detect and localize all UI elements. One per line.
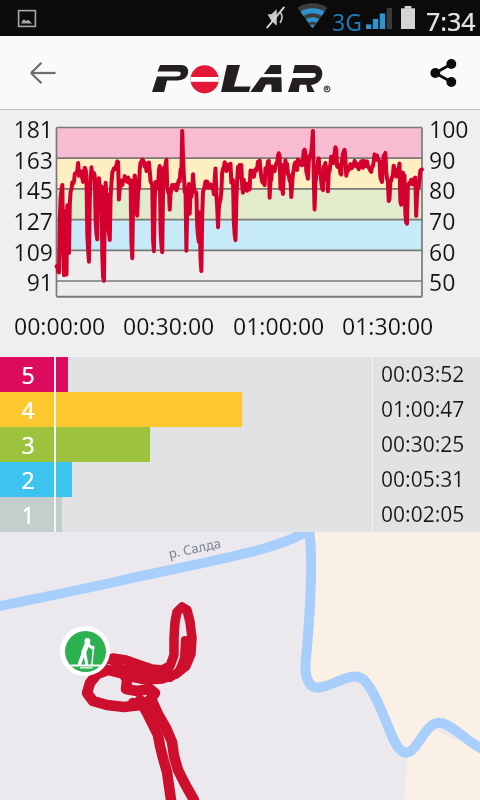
staticText: 00:05:31 (381, 465, 465, 494)
staticText: 4 (1, 394, 55, 425)
staticText: 109 (2, 236, 53, 267)
staticText: 3 (1, 429, 55, 460)
staticText: 60 (429, 236, 479, 267)
staticText: 50 (429, 266, 479, 297)
staticText: 145 (2, 174, 53, 205)
button[interactable]: Share (418, 48, 468, 98)
button[interactable]: 3 (0, 427, 480, 462)
staticText: 00:02:05 (381, 500, 465, 529)
staticText: 2 (1, 464, 55, 495)
staticText: р. Салда (167, 534, 223, 562)
button[interactable]: Start point (60, 626, 110, 676)
staticText: 7:34 (426, 4, 476, 38)
staticText: 00:00:00 (14, 310, 106, 341)
button[interactable]: Back (18, 48, 68, 98)
staticText: 5 (1, 359, 55, 390)
staticText: 01:30:00 (342, 310, 434, 341)
staticText: 1 (1, 499, 55, 530)
staticText: 100 (429, 113, 479, 144)
button[interactable]: 4 (0, 392, 480, 427)
staticText: 91 (2, 266, 53, 297)
staticText: 163 (2, 144, 53, 175)
button[interactable]: 2 (0, 462, 480, 497)
staticText: 00:30:25 (381, 430, 465, 459)
button[interactable]: 1 (0, 497, 480, 532)
staticText: 80 (429, 174, 479, 205)
staticText: 127 (2, 205, 53, 236)
staticText: 181 (2, 113, 53, 144)
staticText: 3G (332, 6, 362, 37)
button[interactable]: 5 (0, 357, 480, 392)
staticText: 01:00:47 (381, 395, 465, 424)
staticText: 01:00:00 (233, 310, 325, 341)
staticText: 00:30:00 (123, 310, 215, 341)
staticText: 00:03:52 (381, 360, 465, 389)
staticText: 90 (429, 144, 479, 175)
staticText: 70 (429, 205, 479, 236)
